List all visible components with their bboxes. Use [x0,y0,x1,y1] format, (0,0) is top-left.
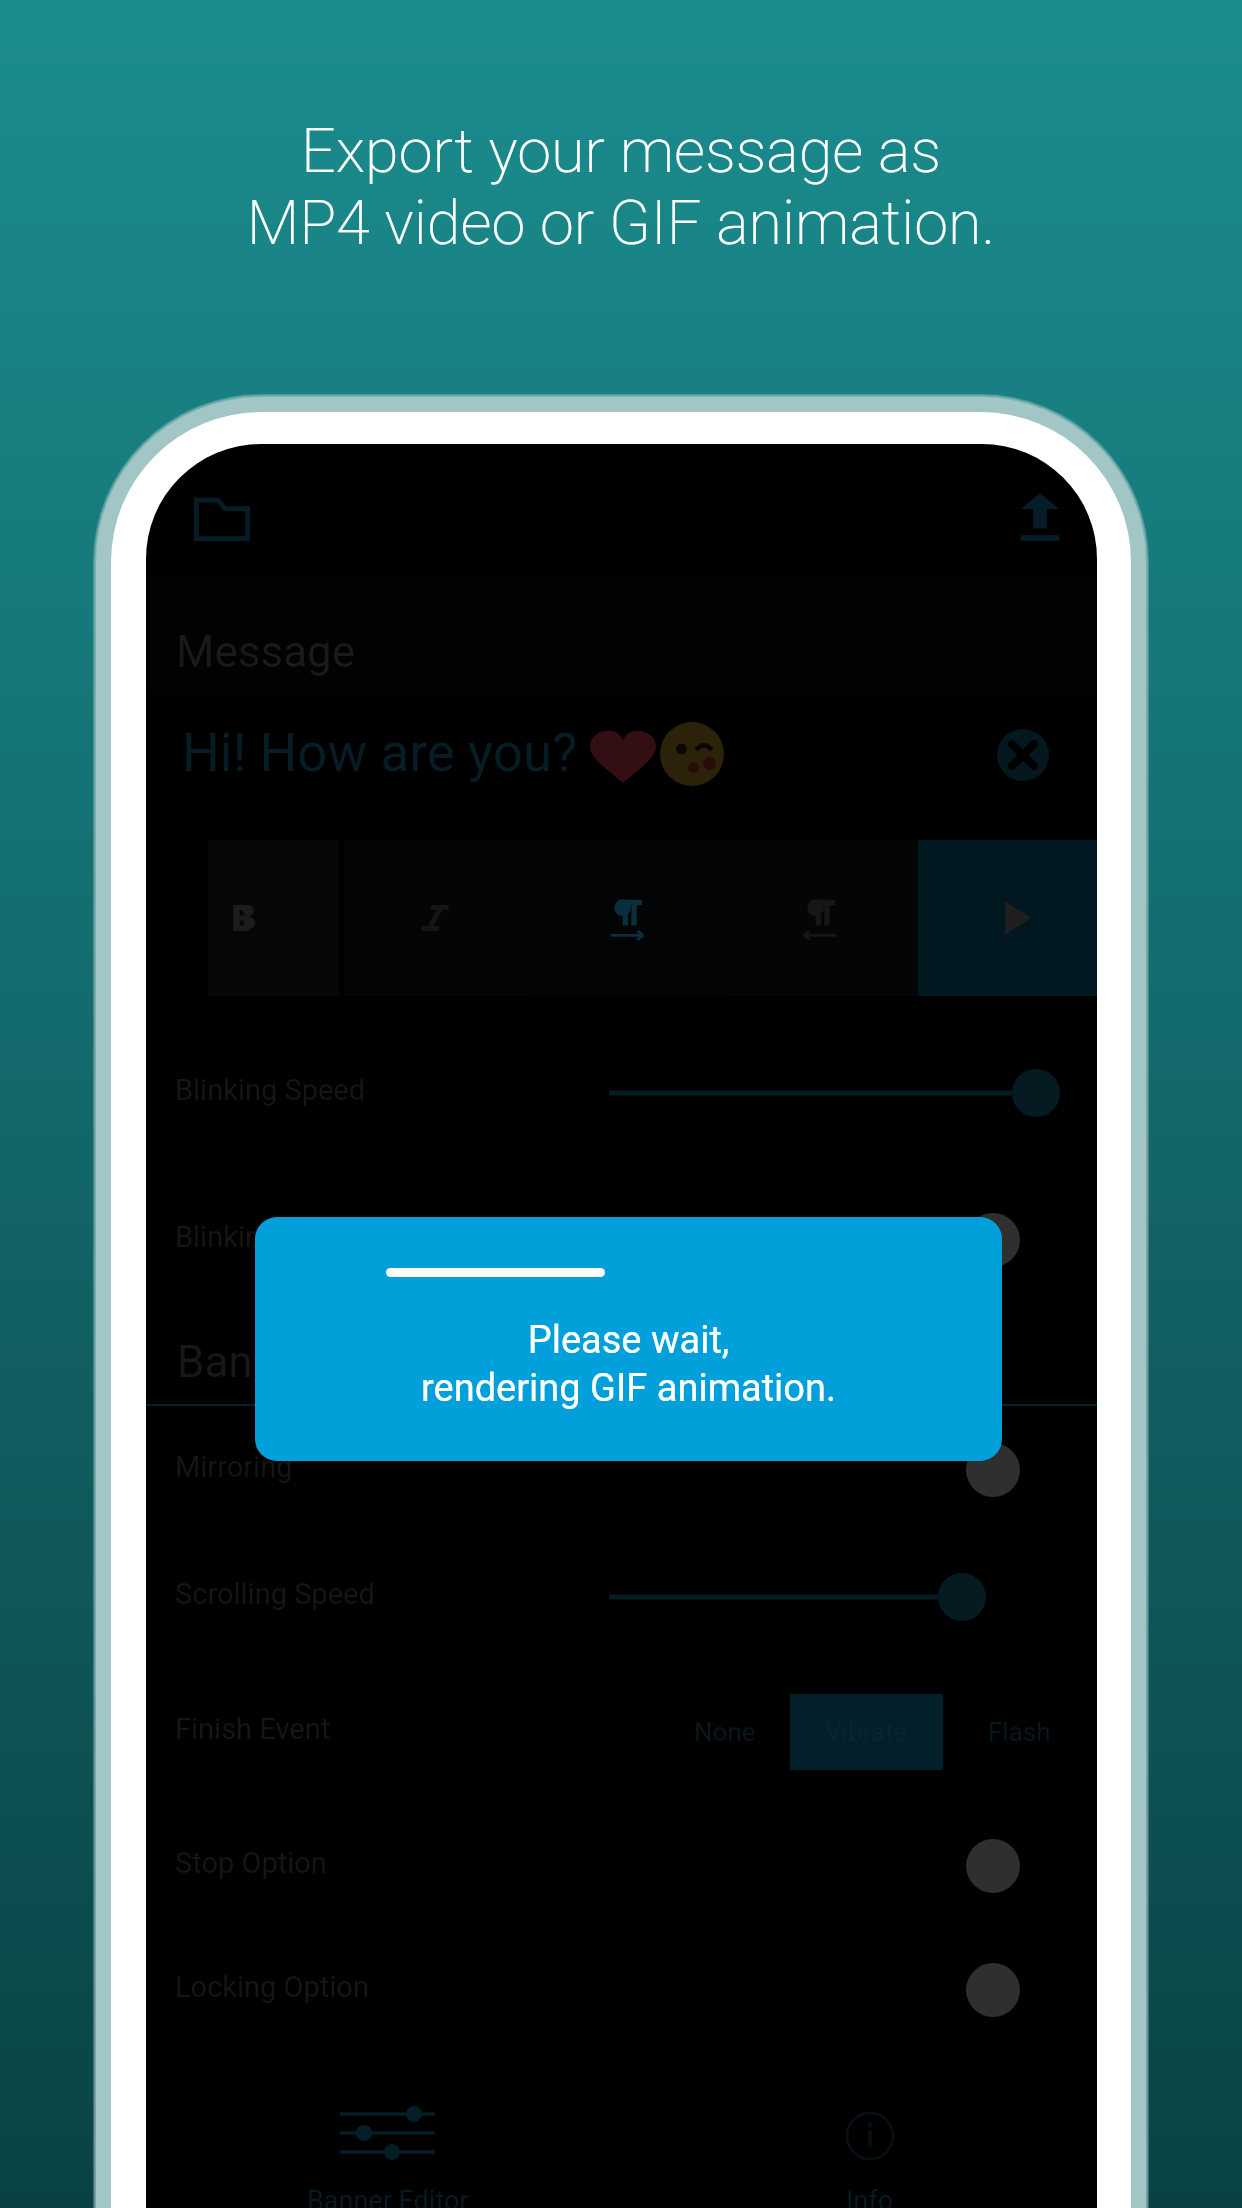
staticText: Blinking [175,1220,278,1254]
staticText: Stop Option [175,1846,327,1880]
staticText: Export your message as MP4 video or GIF … [0,115,1242,259]
button[interactable]: Flash [943,1694,1096,1770]
button[interactable]: Toggle [966,1213,1020,1267]
staticText: Message [176,626,356,678]
staticText: Banner [177,1336,316,1388]
staticText: Info [846,2185,894,2208]
staticText: Please wait, rendering GIF animation. [255,1318,1002,1410]
staticText: Scrolling Speed [175,1577,375,1611]
button[interactable]: Banner Editor [146,2070,621,2208]
staticText: Finish Event [175,1712,331,1746]
button[interactable]: Toggle [966,1443,1020,1497]
staticText: Locking Option [175,1970,369,2004]
button[interactable]: Toggle [966,1839,1020,1893]
staticText: Flash [988,1717,1051,1747]
button[interactable]: Open saved banners [194,495,250,551]
button[interactable]: Hi! How are you? [169,693,1088,813]
button[interactable]: Format option [184,840,304,996]
button[interactable]: Export banner [1012,490,1068,546]
staticText: Blinking Speed [175,1073,366,1107]
staticText: Mirroring [175,1450,293,1484]
button[interactable]: Toggle [966,1963,1020,2017]
button[interactable]: None [648,1694,801,1770]
staticText: None [694,1717,756,1747]
button[interactable]: Format option [567,840,687,996]
button[interactable]: Clear text [997,729,1049,781]
button[interactable]: Format option [956,840,1076,996]
staticText: Hi! How are you? [182,722,578,784]
staticText: Banner Editor [307,2185,469,2208]
